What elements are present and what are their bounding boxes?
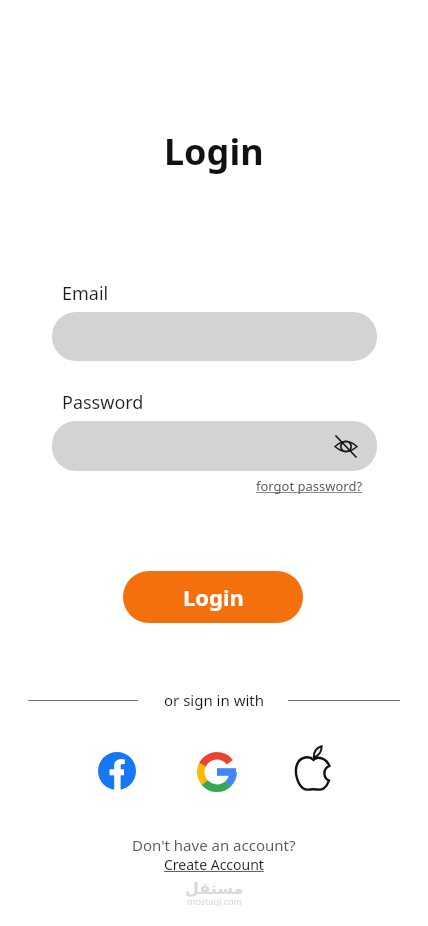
button[interactable]: Create Account [164,855,264,874]
button[interactable] [293,741,337,793]
staticText: Login [164,127,264,176]
staticText: or sign in with [164,690,265,710]
staticText: مستقل [185,879,244,898]
button[interactable] [52,312,377,361]
button[interactable] [52,421,377,471]
staticText: Password [62,390,144,415]
button[interactable]: Login [123,571,303,623]
staticText: Don't have an account? [132,835,296,855]
staticText: Login [183,582,244,612]
staticText: Email [62,281,109,306]
staticText: mostaql.com [187,895,242,907]
button[interactable] [197,752,237,792]
button[interactable]: forgot password? [256,477,363,495]
button[interactable] [98,752,136,790]
